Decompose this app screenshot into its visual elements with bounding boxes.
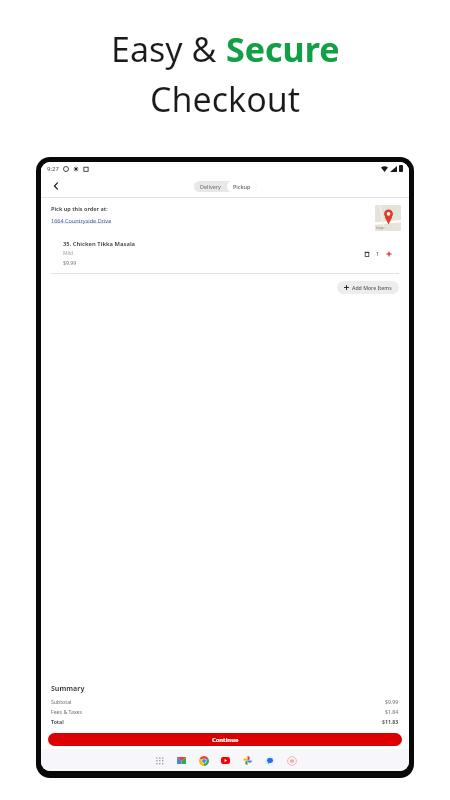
button[interactable]: All apps [153, 754, 166, 767]
button[interactable]: Back [49, 179, 63, 193]
staticText: Mild [63, 250, 74, 257]
staticText: $1.84 [385, 708, 399, 715]
button[interactable]: 1664 Countryside Drive [51, 217, 112, 224]
staticText: 1 [376, 250, 380, 257]
staticText: $9.99 [63, 259, 77, 266]
button[interactable]: Map [375, 205, 401, 231]
button[interactable]: YouTube [219, 754, 232, 767]
staticText: $11.83 [382, 718, 399, 725]
button[interactable]: Continue [48, 733, 402, 746]
button[interactable]: Photos [241, 754, 254, 767]
button[interactable]: Remove item [357, 247, 399, 260]
button[interactable]: Gmail [175, 754, 188, 767]
button[interactable]: Pickup [227, 181, 257, 192]
button[interactable]: Add More Items [337, 281, 399, 294]
staticText: Checkout [150, 76, 301, 122]
staticText: 35. Chicken Tikka Masala [63, 240, 136, 248]
other: Increase quantity [386, 251, 392, 257]
staticText: Delivery [200, 183, 221, 190]
other: Remove item [364, 251, 370, 257]
staticText: Easy & [111, 26, 226, 72]
staticText: Continue [212, 736, 239, 744]
staticText: Pick up this order at: [51, 205, 108, 212]
staticText: Google [376, 226, 385, 230]
staticText: Secure [226, 26, 340, 72]
button[interactable]: Delivery [194, 181, 227, 192]
staticText: $9.99 [385, 698, 399, 705]
button[interactable]: Recents [285, 754, 298, 767]
staticText: 1664 Countryside Drive [51, 217, 112, 224]
staticText: Pickup [233, 183, 251, 190]
staticText: Summary [51, 684, 85, 694]
staticText: Subtotal [51, 698, 72, 705]
staticText: Add More Items [352, 284, 392, 291]
staticText: 9:27 [47, 165, 59, 173]
button[interactable]: Chrome [197, 754, 210, 767]
staticText: Total [51, 718, 64, 725]
staticText: Fees & Taxes [51, 708, 82, 715]
button[interactable]: Messages [263, 754, 276, 767]
